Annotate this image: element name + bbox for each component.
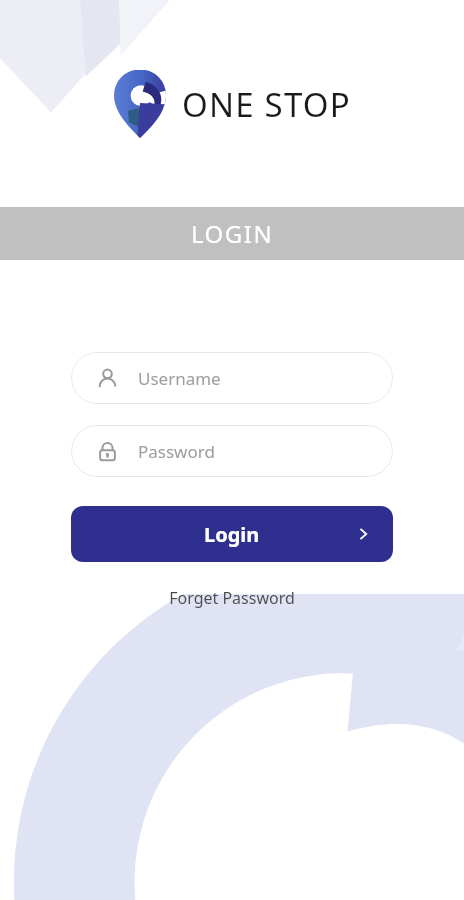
staticText: Password (138, 440, 215, 463)
staticText: Login (204, 521, 260, 548)
staticText: Username (138, 367, 221, 390)
staticText: Forget Password (169, 587, 295, 609)
button[interactable]: Login (71, 506, 393, 562)
button[interactable]: Password (71, 425, 393, 477)
staticText: LOGIN (191, 217, 274, 250)
button[interactable]: Username (71, 352, 393, 404)
staticText: ONE STOP (182, 82, 351, 127)
button[interactable]: Forget Password (0, 587, 464, 609)
